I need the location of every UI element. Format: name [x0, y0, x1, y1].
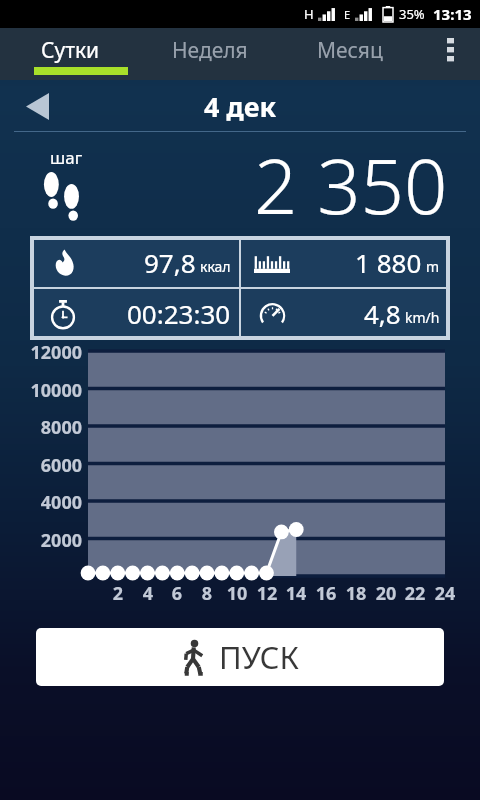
staticText: Неделя — [172, 36, 248, 65]
staticText: 6000 — [2, 453, 82, 478]
staticText: шаг — [50, 146, 83, 169]
button[interactable]: Месяц — [280, 28, 420, 80]
staticText: Сутки — [41, 36, 100, 65]
staticText: 16 — [312, 581, 340, 606]
staticText: ПУСК — [219, 636, 299, 678]
staticText: 4000 — [2, 490, 82, 515]
staticText: E — [344, 7, 351, 22]
button[interactable]: ПУСК — [36, 628, 444, 686]
staticText: 1 880 — [355, 245, 422, 280]
staticText: 2 350 — [254, 133, 448, 237]
button[interactable]: More options — [420, 28, 480, 80]
staticText: 8000 — [2, 415, 82, 440]
staticText: 4 — [134, 581, 162, 606]
button[interactable]: Неделя — [140, 28, 280, 80]
staticText: 2 — [104, 581, 132, 606]
staticText: 6 — [163, 581, 191, 606]
staticText: 14 — [282, 581, 310, 606]
staticText: 10000 — [2, 378, 82, 403]
staticText: km/h — [405, 308, 440, 327]
staticText: 4 дек — [204, 88, 277, 125]
staticText: 35% — [399, 5, 425, 23]
staticText: 00:23:30 — [127, 296, 231, 331]
staticText: 22 — [401, 581, 429, 606]
staticText: 12000 — [2, 340, 82, 365]
staticText: 24 — [431, 581, 459, 606]
staticText: 97,8 — [144, 245, 196, 280]
staticText: 4,8 — [364, 296, 401, 331]
staticText: H — [304, 5, 314, 23]
staticText: 8 — [193, 581, 221, 606]
staticText: 10 — [223, 581, 251, 606]
staticText: 13:13 — [433, 4, 472, 24]
staticText: 18 — [342, 581, 370, 606]
staticText: 2000 — [2, 528, 82, 553]
button[interactable]: Сутки — [0, 28, 140, 80]
button[interactable]: Previous day — [12, 81, 62, 131]
staticText: ккал — [200, 257, 231, 276]
staticText: 20 — [372, 581, 400, 606]
staticText: m — [426, 257, 440, 276]
staticText: Месяц — [317, 36, 383, 65]
staticText: 12 — [253, 581, 281, 606]
